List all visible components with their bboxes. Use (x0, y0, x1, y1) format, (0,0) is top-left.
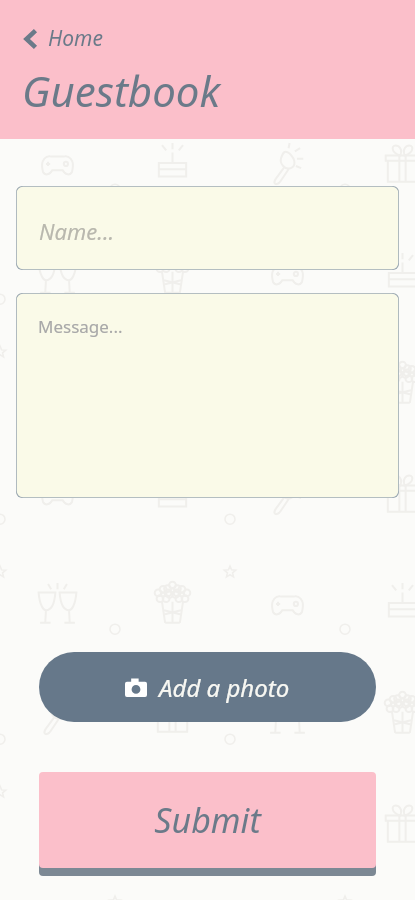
button[interactable]: Name... (16, 186, 399, 270)
staticText: Home (48, 24, 103, 53)
staticText: Submit (154, 797, 261, 843)
staticText: Name... (39, 216, 115, 246)
button[interactable]: Message... (16, 293, 399, 498)
staticText: Add a photo (159, 671, 290, 704)
button[interactable]: Add a photo (39, 652, 376, 722)
button[interactable]: Submit (39, 772, 376, 868)
staticText: Guestbook (22, 62, 221, 119)
button[interactable]: Home (18, 20, 109, 57)
staticText: Message... (38, 315, 123, 338)
